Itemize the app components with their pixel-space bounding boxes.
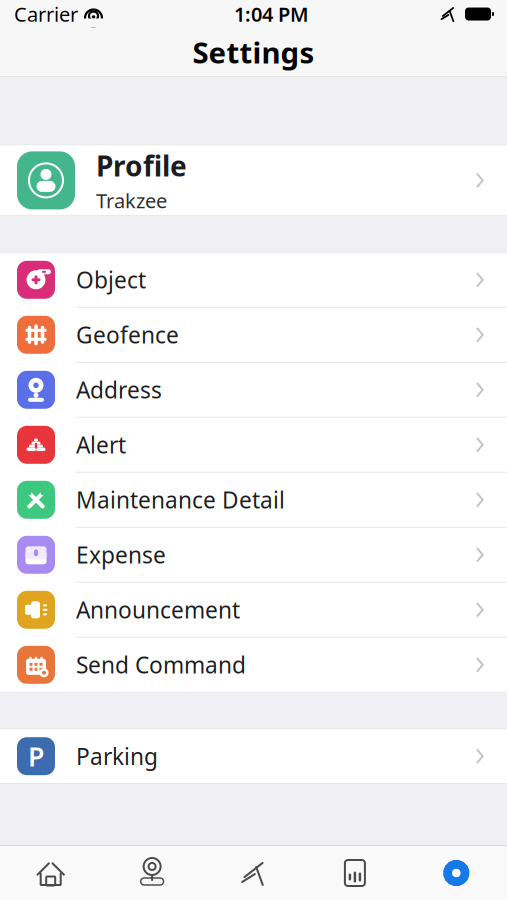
button[interactable]: Object <box>0 253 507 308</box>
staticText: Object <box>76 265 146 295</box>
button[interactable]: Alert <box>0 418 507 473</box>
button[interactable]: Maintenance Detail <box>0 473 507 528</box>
button[interactable]: Settings <box>406 846 507 900</box>
staticText: Alert <box>76 430 126 460</box>
staticText: Geofence <box>76 320 179 350</box>
staticText: Trakzee <box>96 187 167 214</box>
button[interactable]: Expense <box>0 528 507 583</box>
staticText: Carrier <box>14 1 78 27</box>
staticText: Announcement <box>76 595 240 625</box>
button[interactable]: P <box>0 729 507 783</box>
staticText: Parking <box>76 741 158 771</box>
button[interactable]: Reports <box>304 846 406 900</box>
button[interactable]: Send Command <box>0 638 507 692</box>
staticText: 1:04 PM <box>234 1 309 27</box>
button[interactable]: Announcement <box>0 583 507 638</box>
button[interactable]: Profile <box>0 145 507 215</box>
staticText: Send Command <box>76 650 246 680</box>
button[interactable]: Home <box>0 846 101 900</box>
button[interactable]: Address <box>0 363 507 418</box>
staticText: Settings <box>192 32 314 71</box>
staticText: Maintenance Detail <box>76 485 285 515</box>
staticText: P <box>28 738 44 774</box>
staticText: Profile <box>96 147 187 184</box>
staticText: Expense <box>76 540 166 570</box>
button[interactable]: Track <box>203 846 304 900</box>
button[interactable]: Places <box>101 846 203 900</box>
staticText: Address <box>76 375 162 405</box>
button[interactable]: Geofence <box>0 308 507 363</box>
